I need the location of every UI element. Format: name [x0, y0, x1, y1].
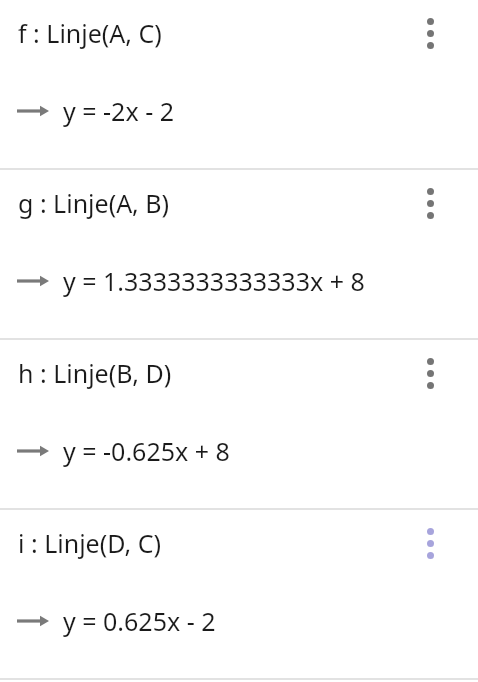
staticText: g : Linje(A, B): [18, 186, 170, 220]
button[interactable]: More options: [406, 349, 454, 397]
button[interactable]: h : Linje(B, D): [0, 340, 478, 510]
button[interactable]: More options: [406, 179, 454, 227]
button[interactable]: f : Linje(A, C): [0, 0, 478, 170]
staticText: i : Linje(D, C): [18, 526, 161, 560]
staticText: h : Linje(B, D): [18, 356, 172, 390]
staticText: f : Linje(A, C): [18, 16, 162, 50]
staticText: y = 1.3333333333333x + 8: [63, 264, 365, 298]
button[interactable]: g : Linje(A, B): [0, 170, 478, 340]
staticText: y = 0.625x - 2: [63, 604, 216, 638]
button[interactable]: More options: [406, 519, 454, 567]
staticText: y = -2x - 2: [63, 94, 174, 128]
staticText: y = -0.625x + 8: [63, 434, 230, 468]
button[interactable]: More options: [406, 9, 454, 57]
button[interactable]: i : Linje(D, C): [0, 510, 478, 680]
